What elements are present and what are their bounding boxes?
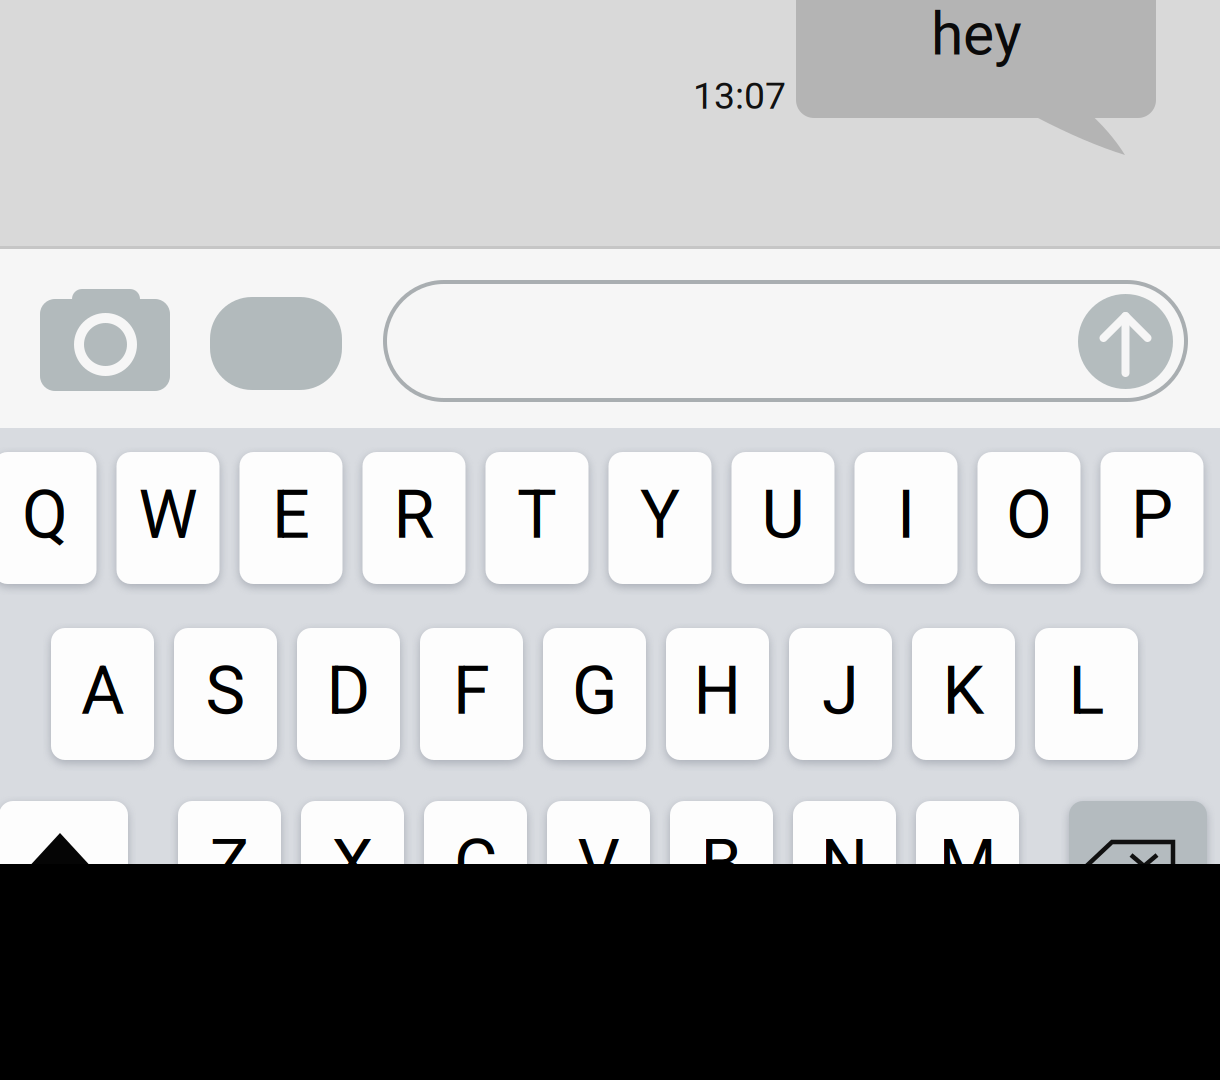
button[interactable]: F xyxy=(420,628,523,760)
button[interactable]: W xyxy=(116,452,219,584)
staticText: F xyxy=(453,652,490,730)
button[interactable]: iMessage apps xyxy=(210,297,342,390)
button[interactable]: Y xyxy=(608,452,711,584)
staticText: 13:07 xyxy=(693,74,786,118)
staticText: X xyxy=(331,825,373,903)
button[interactable]: I xyxy=(854,452,957,584)
button[interactable]: T xyxy=(485,452,588,584)
staticText: Z xyxy=(209,825,249,903)
staticText: P xyxy=(1131,476,1173,554)
button[interactable]: O xyxy=(977,452,1080,584)
staticText: Q xyxy=(22,476,68,554)
staticText: O xyxy=(1006,476,1052,554)
button[interactable]: D xyxy=(297,628,400,760)
button[interactable]: U xyxy=(731,452,834,584)
button[interactable]: G xyxy=(543,628,646,760)
button[interactable]: Q xyxy=(0,452,96,584)
button[interactable]: H xyxy=(666,628,769,760)
staticText: C xyxy=(454,825,497,903)
button[interactable]: B xyxy=(670,801,773,933)
staticText: W xyxy=(138,476,197,554)
staticText: A xyxy=(81,652,124,730)
button[interactable]: X xyxy=(301,801,404,933)
staticText: N xyxy=(820,825,868,903)
staticText: K xyxy=(942,652,984,730)
button[interactable]: E xyxy=(239,452,342,584)
staticText: U xyxy=(761,476,804,554)
staticText: T xyxy=(517,476,557,554)
button[interactable]: P xyxy=(1100,452,1203,584)
button[interactable]: S xyxy=(174,628,277,760)
button[interactable]: Take photo xyxy=(35,286,175,396)
button[interactable]: Shift xyxy=(0,801,128,933)
staticText: S xyxy=(205,652,245,730)
button[interactable]: Delete xyxy=(1069,801,1207,933)
staticText: B xyxy=(700,825,742,903)
staticText: H xyxy=(693,652,741,730)
staticText: hey xyxy=(931,0,1022,69)
staticText: G xyxy=(572,652,617,730)
button[interactable]: V xyxy=(547,801,650,933)
staticText: M xyxy=(938,825,996,903)
button[interactable]: L xyxy=(1035,628,1138,760)
button[interactable]: Z xyxy=(178,801,281,933)
button[interactable]: N xyxy=(793,801,896,933)
button[interactable]: C xyxy=(424,801,527,933)
button[interactable]: A xyxy=(51,628,154,760)
staticText: D xyxy=(326,652,370,730)
button[interactable]: M xyxy=(916,801,1019,933)
staticText: E xyxy=(272,476,310,554)
staticText: V xyxy=(577,825,619,903)
button[interactable]: J xyxy=(789,628,892,760)
staticText: R xyxy=(393,476,434,554)
button[interactable]: K xyxy=(912,628,1015,760)
staticText: J xyxy=(822,652,859,730)
button[interactable]: Send xyxy=(1078,294,1173,389)
staticText: L xyxy=(1068,652,1104,730)
button[interactable]: R xyxy=(362,452,465,584)
staticText: I xyxy=(897,476,915,554)
staticText: Y xyxy=(640,476,680,554)
